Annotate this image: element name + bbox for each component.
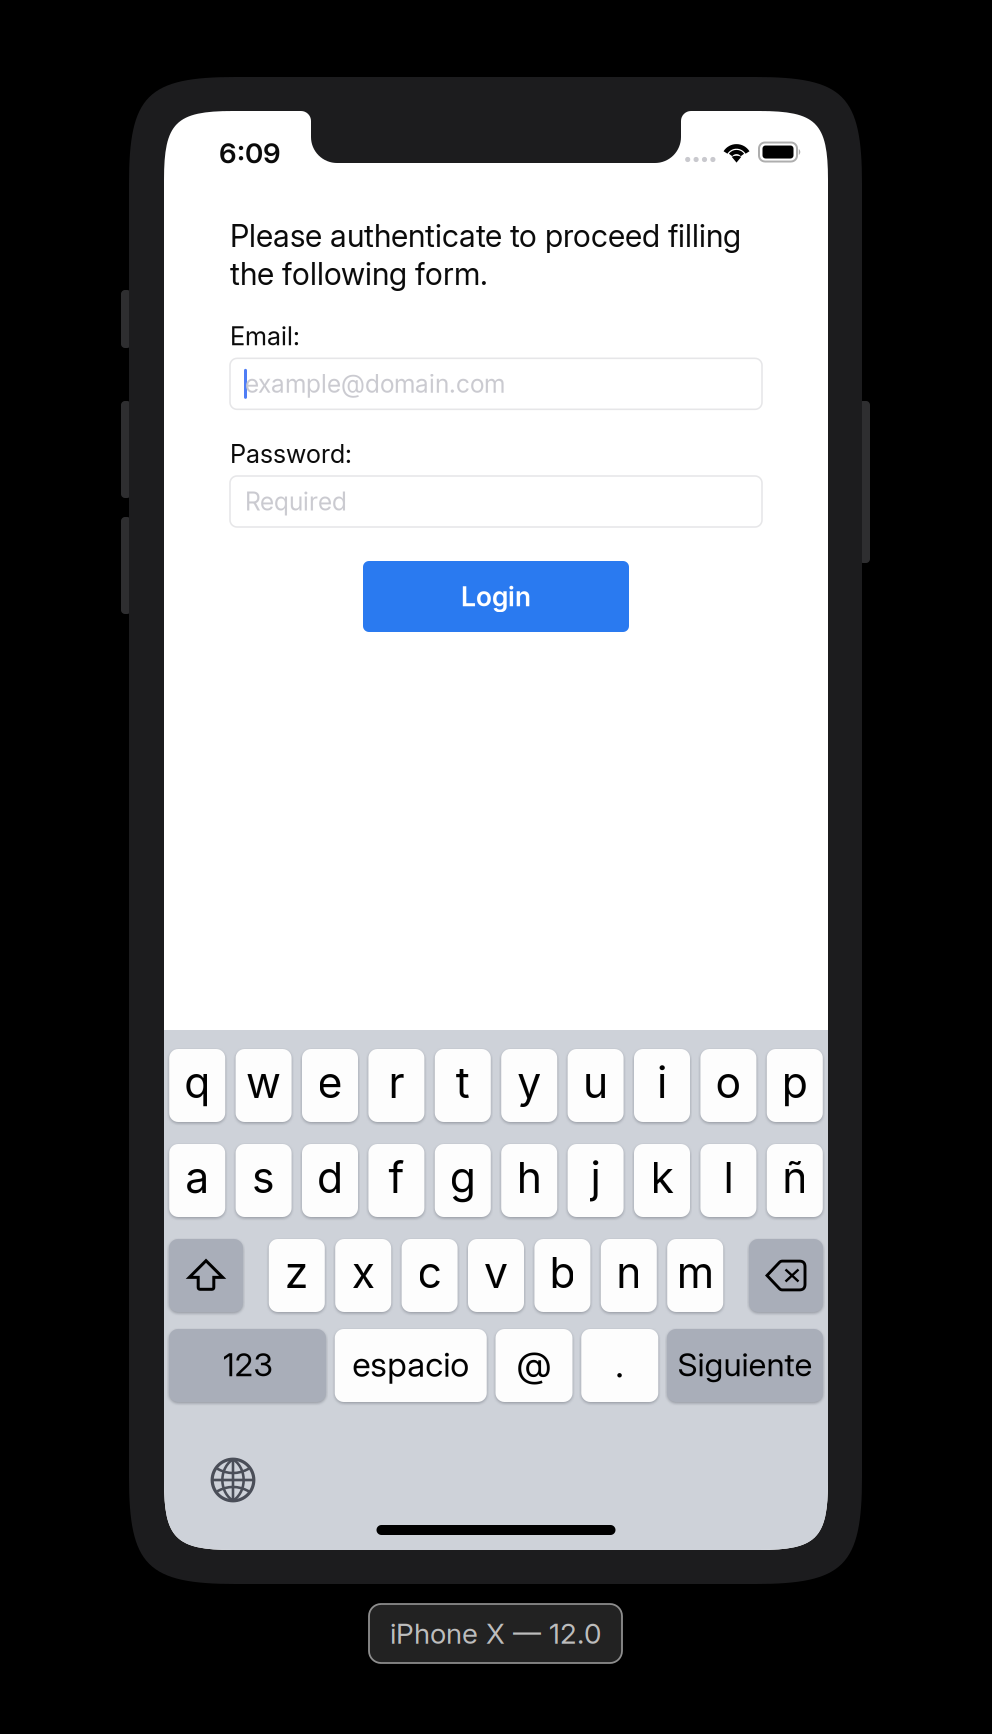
staticText: h — [517, 1152, 542, 1203]
staticText: y — [517, 1057, 541, 1108]
staticText: . — [615, 1343, 624, 1386]
button[interactable]: r — [368, 1049, 424, 1122]
button[interactable]: o — [700, 1049, 756, 1122]
button[interactable]: x — [335, 1239, 391, 1312]
button[interactable]: h — [501, 1144, 557, 1217]
button[interactable]: c — [402, 1239, 458, 1312]
button[interactable]: Delete — [749, 1239, 823, 1312]
staticText: u — [583, 1057, 608, 1108]
staticText: espacio — [352, 1344, 469, 1385]
staticText: f — [388, 1152, 404, 1203]
staticText: d — [317, 1152, 343, 1203]
button[interactable]: v — [468, 1239, 524, 1312]
staticText: v — [484, 1247, 508, 1298]
button[interactable]: a — [169, 1144, 225, 1217]
button[interactable]: Required — [230, 476, 762, 527]
staticText: p — [782, 1057, 808, 1108]
staticText: Login — [461, 580, 531, 613]
staticText: e — [317, 1057, 342, 1108]
button[interactable]: g — [435, 1144, 491, 1217]
staticText: iPhone X — 12.0 — [390, 1617, 601, 1650]
button[interactable]: d — [302, 1144, 358, 1217]
staticText: o — [715, 1057, 741, 1108]
staticText: z — [285, 1247, 309, 1298]
staticText: x — [352, 1247, 375, 1298]
button[interactable]: p — [767, 1049, 823, 1122]
staticText: 6:09 — [219, 136, 281, 170]
button[interactable]: q — [169, 1049, 225, 1122]
staticText: q — [184, 1057, 210, 1108]
staticText: w — [246, 1057, 281, 1108]
button[interactable]: Change keyboard — [210, 1457, 256, 1503]
staticText: 123 — [222, 1345, 272, 1384]
staticText: Siguiente — [677, 1345, 812, 1384]
staticText: j — [591, 1152, 601, 1203]
button[interactable]: u — [568, 1049, 624, 1122]
staticText: t — [456, 1057, 470, 1108]
button[interactable]: i — [634, 1049, 690, 1122]
button[interactable]: . — [581, 1329, 658, 1402]
staticText: i — [657, 1057, 667, 1108]
button[interactable]: Siguiente — [667, 1329, 823, 1402]
staticText: m — [677, 1247, 714, 1298]
staticText: r — [388, 1057, 404, 1108]
staticText: Email: — [230, 321, 300, 351]
button[interactable]: k — [634, 1144, 690, 1217]
button[interactable]: f — [368, 1144, 424, 1217]
staticText: g — [450, 1152, 476, 1203]
button[interactable]: m — [667, 1239, 723, 1312]
button[interactable]: b — [534, 1239, 590, 1312]
staticText: Password: — [230, 438, 352, 469]
staticText: example@domain.com — [245, 369, 505, 399]
button[interactable]: j — [568, 1144, 624, 1217]
button[interactable]: y — [501, 1049, 557, 1122]
staticText: s — [252, 1152, 275, 1203]
staticText: Please authenticate to proceed filling t… — [230, 217, 741, 293]
staticText: l — [723, 1152, 733, 1203]
button[interactable]: t — [435, 1049, 491, 1122]
staticText: a — [185, 1152, 209, 1203]
button[interactable]: s — [236, 1144, 292, 1217]
staticText: n — [616, 1247, 641, 1298]
button[interactable]: w — [236, 1049, 292, 1122]
button[interactable]: n — [601, 1239, 657, 1312]
button[interactable]: ñ — [767, 1144, 823, 1217]
button[interactable]: l — [700, 1144, 756, 1217]
staticText: ñ — [782, 1152, 807, 1203]
staticText: @ — [516, 1343, 551, 1386]
staticText: Required — [245, 487, 347, 516]
button[interactable]: espacio — [335, 1329, 487, 1402]
staticText: c — [418, 1247, 442, 1298]
button[interactable]: e — [302, 1049, 358, 1122]
staticText: b — [549, 1247, 575, 1298]
button[interactable]: @ — [495, 1329, 572, 1402]
button[interactable]: example@domain.com — [230, 358, 762, 409]
button[interactable]: z — [269, 1239, 325, 1312]
button[interactable]: Shift — [169, 1239, 243, 1312]
button[interactable]: 123 — [169, 1329, 326, 1402]
staticText: k — [650, 1152, 673, 1203]
button[interactable]: Login — [363, 561, 629, 632]
